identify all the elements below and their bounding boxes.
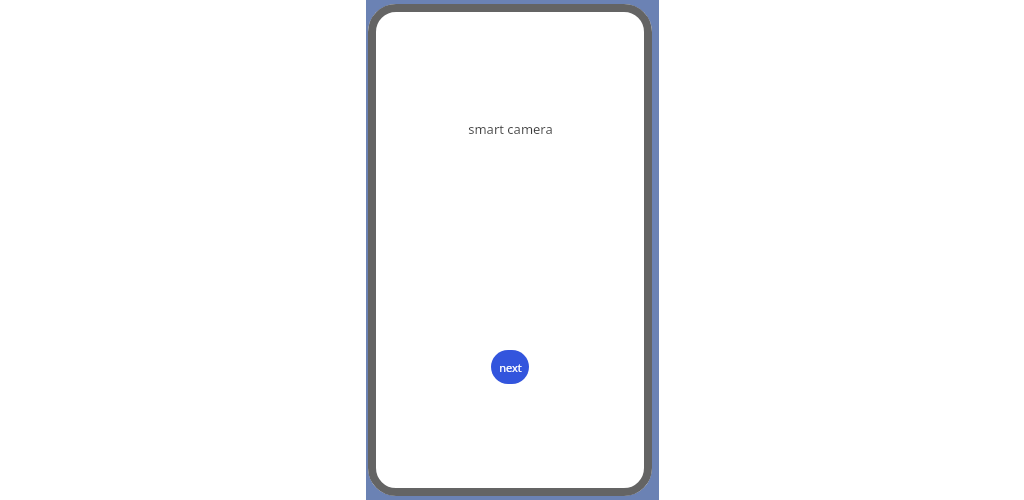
staticText: next [499,360,522,375]
button[interactable]: next [491,350,529,384]
staticText: smart camera [468,120,553,138]
